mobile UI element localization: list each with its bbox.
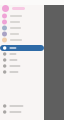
button[interactable] (0, 51, 44, 57)
button[interactable] (0, 109, 44, 115)
button[interactable] (0, 69, 44, 75)
button[interactable] (0, 31, 44, 37)
button[interactable] (0, 19, 44, 25)
button[interactable] (0, 57, 44, 63)
button[interactable] (0, 25, 44, 31)
button[interactable] (0, 103, 44, 109)
button[interactable] (0, 37, 44, 43)
button[interactable] (0, 63, 44, 69)
button[interactable] (0, 13, 44, 19)
button[interactable] (0, 45, 44, 51)
